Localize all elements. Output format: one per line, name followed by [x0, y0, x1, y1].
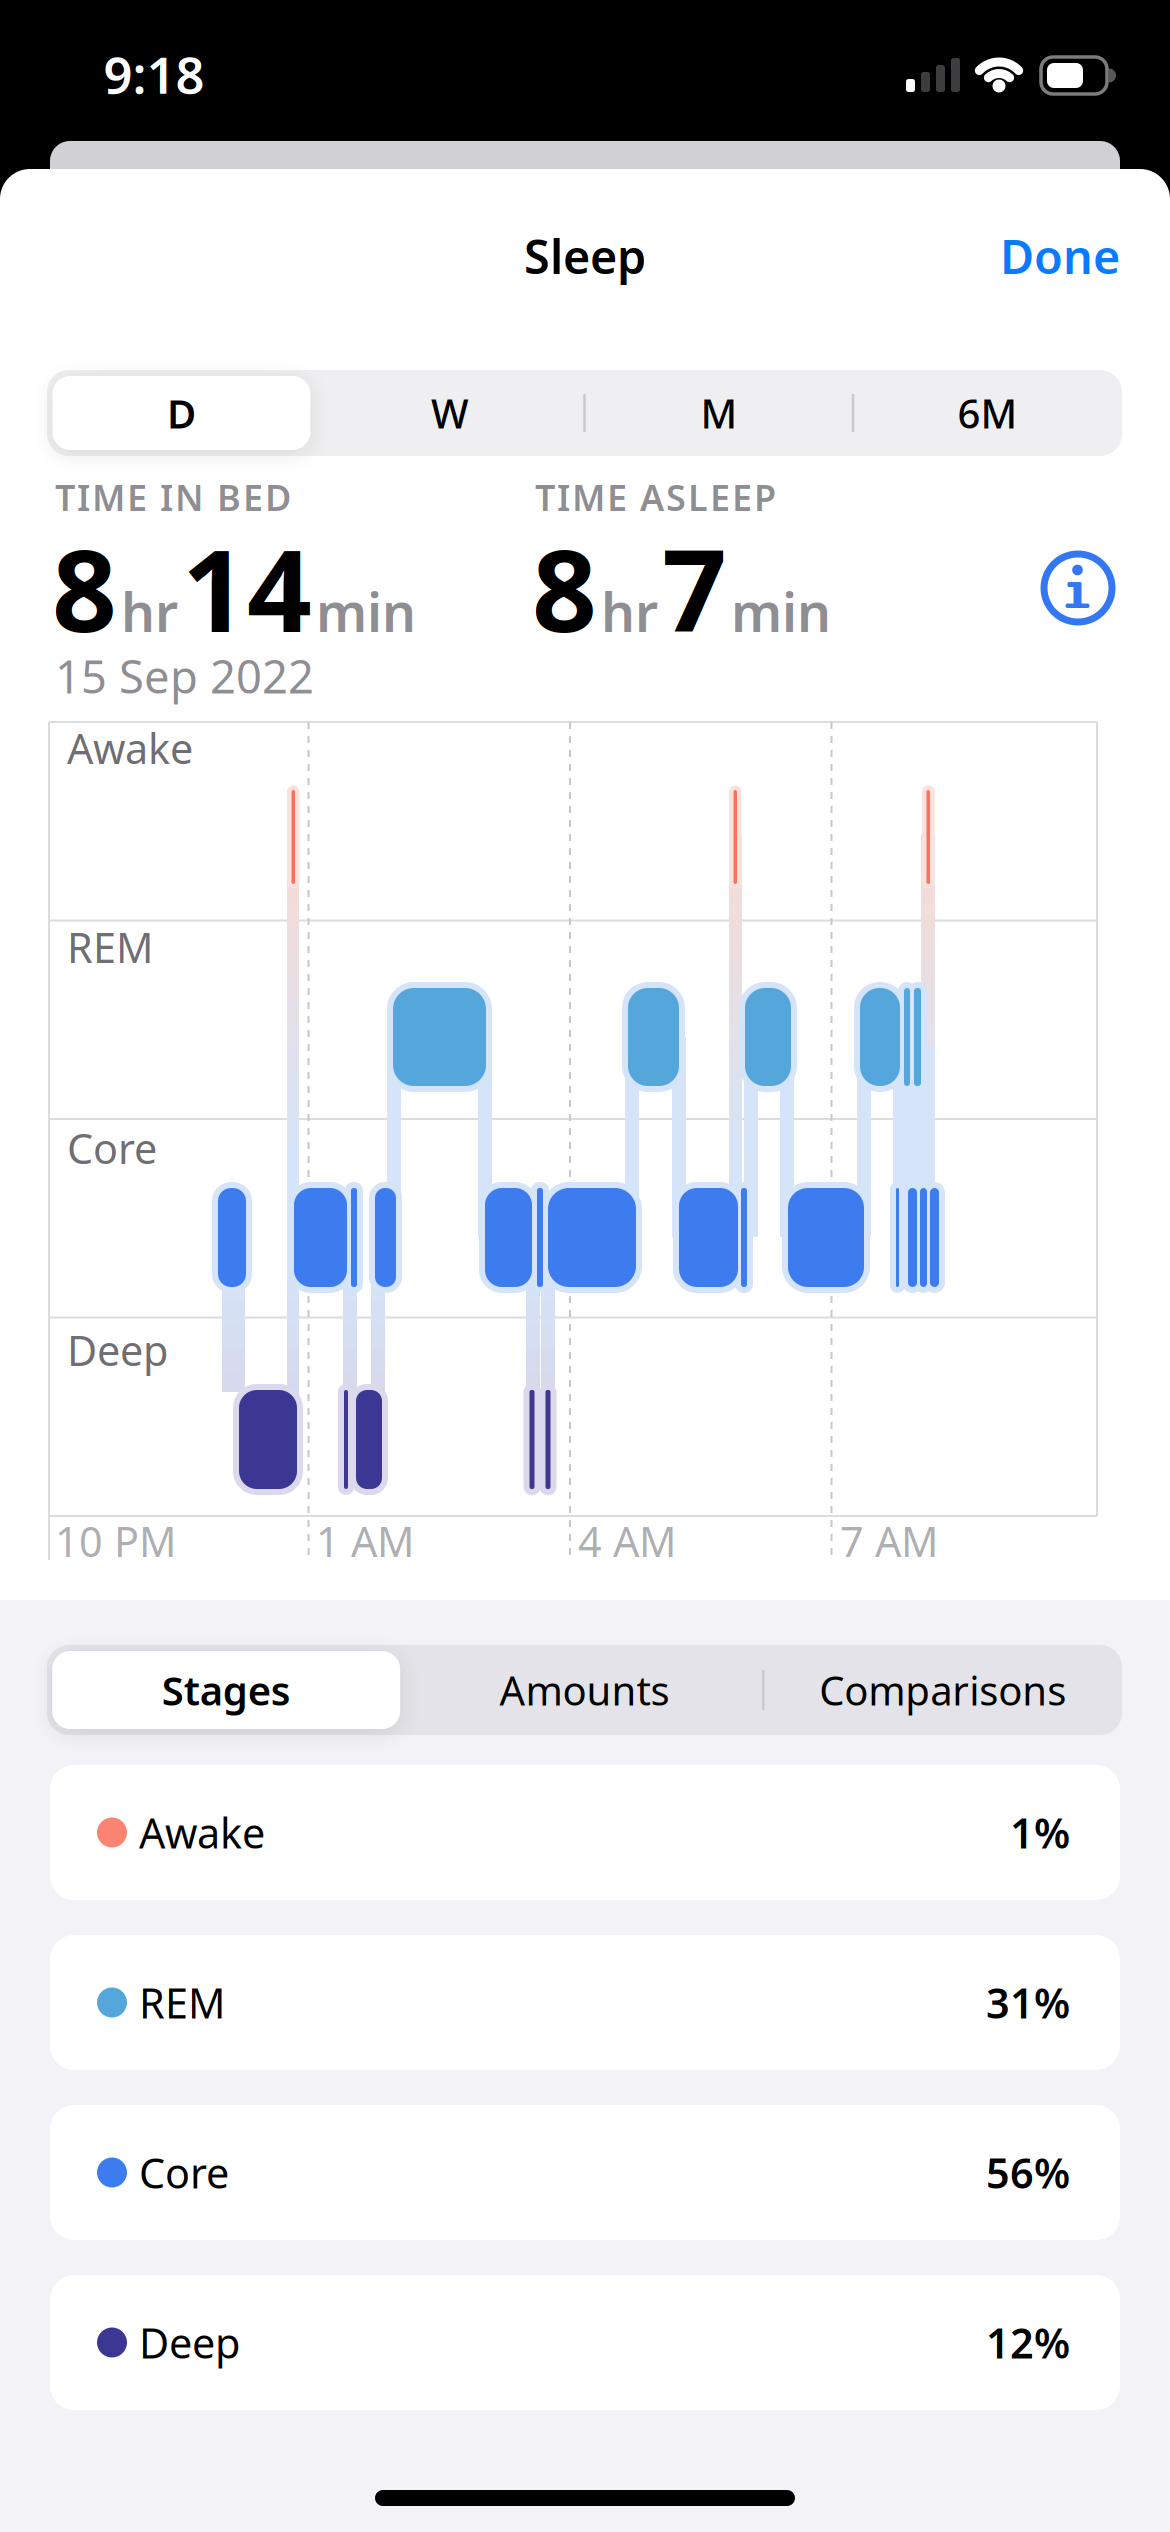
staticText: Core [139, 2145, 229, 2200]
button[interactable]: 6M [854, 370, 1122, 456]
staticText: 7 AM [840, 1514, 938, 1568]
staticText: Awake [139, 1805, 265, 1860]
staticText: 7 [662, 513, 727, 663]
staticText: W [431, 386, 469, 439]
staticText: 1 AM [316, 1514, 414, 1568]
button[interactable]: M [585, 370, 853, 456]
staticText: TIME IN BED [55, 473, 291, 521]
button[interactable]: Amounts [405, 1645, 763, 1735]
staticText: 6M [958, 386, 1018, 439]
staticText: 12% [986, 2315, 1070, 2370]
staticText: 4 AM [578, 1514, 676, 1568]
button[interactable]: Stages [47, 1645, 405, 1735]
staticText: min [316, 576, 416, 647]
staticText: TIME ASLEEP [535, 473, 776, 521]
staticText: 56% [986, 2145, 1070, 2200]
staticText: D [167, 386, 196, 439]
staticText: 9:18 [103, 40, 204, 108]
staticText: 14 [182, 513, 312, 663]
staticText: hr [601, 576, 658, 647]
staticText: 8 [532, 513, 597, 663]
staticText: min [731, 576, 831, 647]
button[interactable]: D [47, 370, 315, 456]
staticText: 15 Sep 2022 [55, 646, 314, 706]
staticText: M [700, 386, 737, 439]
staticText: 31% [986, 1975, 1070, 2030]
staticText: Comparisons [819, 1663, 1066, 1716]
staticText: Done [1000, 225, 1120, 287]
staticText: Sleep [524, 225, 646, 287]
button[interactable]: Comparisons [764, 1645, 1122, 1735]
staticText: 8 [52, 513, 117, 663]
button[interactable]: About sleep data [1038, 548, 1118, 628]
staticText: REM [139, 1975, 225, 2030]
staticText: 10 PM [55, 1514, 176, 1568]
staticText: Stages [162, 1663, 291, 1716]
staticText: 1% [1010, 1805, 1070, 1860]
staticText: hr [121, 576, 178, 647]
button[interactable]: W [316, 370, 584, 456]
staticText: Deep [139, 2315, 240, 2370]
staticText: Deep [67, 1323, 168, 1377]
staticText: Awake [67, 721, 193, 775]
staticText: Amounts [499, 1663, 669, 1716]
staticText: Core [67, 1121, 157, 1175]
staticText: REM [67, 920, 153, 974]
button[interactable]: Done [820, 225, 1120, 287]
